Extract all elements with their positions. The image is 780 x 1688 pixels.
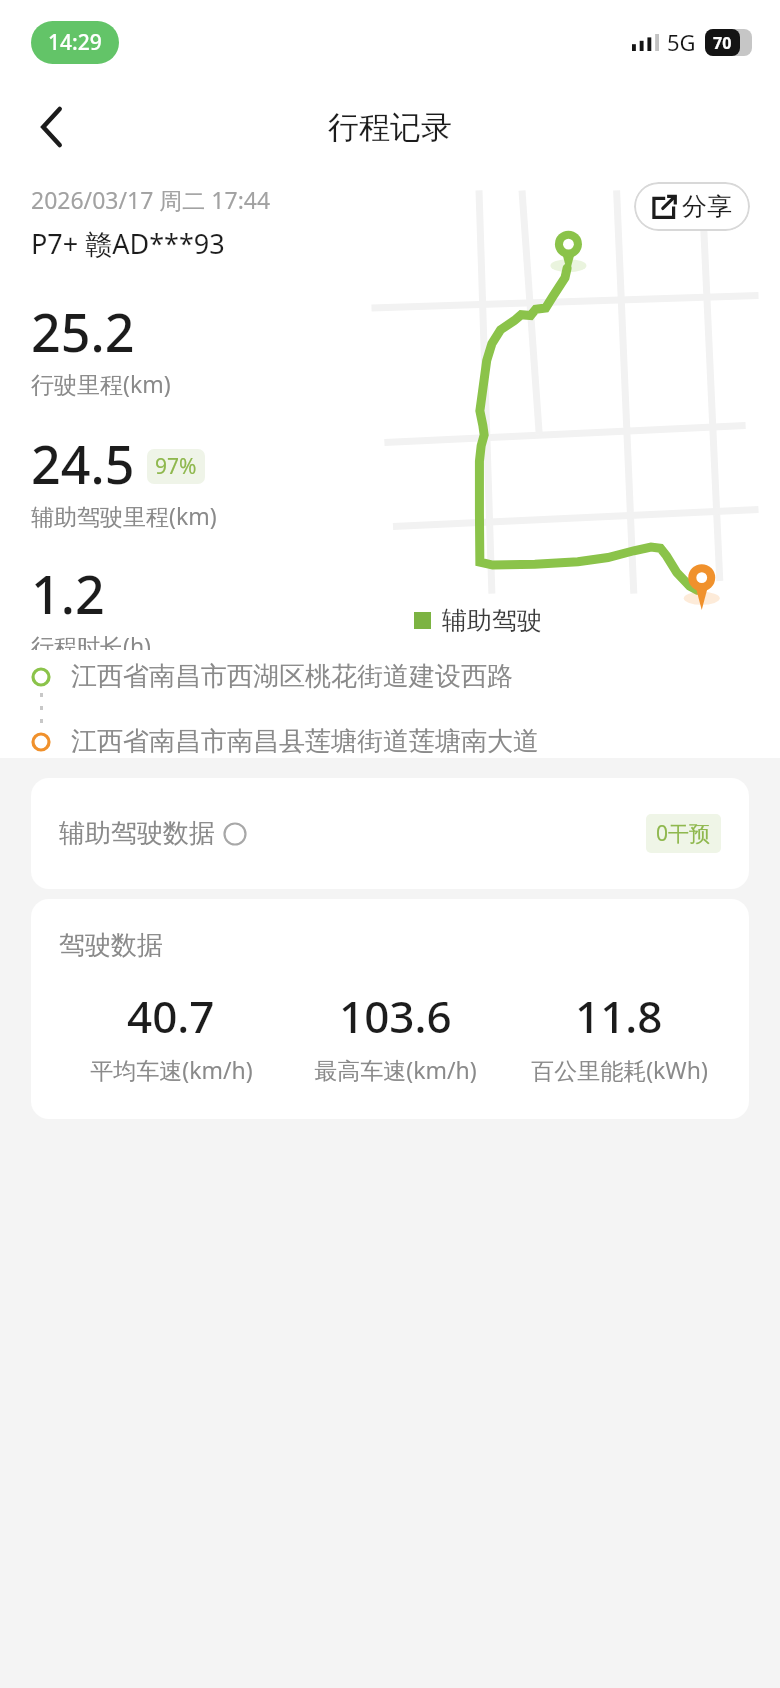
staticText: 辅助驾驶 [442, 605, 542, 636]
staticText: 江西省南昌市西湖区桃花街道建设西路 [71, 660, 513, 693]
staticText: 行程记录 [328, 108, 452, 147]
staticText: 平均车速(km/h) [90, 1054, 253, 1085]
staticText: 24.5 [31, 428, 135, 499]
staticText: 103.6 [339, 986, 452, 1046]
staticText: 5G [667, 27, 696, 57]
button[interactable]: Back [20, 95, 84, 159]
staticText: 百公里能耗(kWh) [531, 1054, 708, 1085]
staticText: 最高车速(km/h) [314, 1054, 477, 1085]
staticText: 辅助驾驶数据 [59, 817, 215, 850]
staticText: 行程时长(h) [31, 630, 152, 650]
staticText: 江西省南昌市南昌县莲塘街道莲塘南大道 [71, 725, 539, 758]
staticText: 1.2 [31, 558, 105, 629]
button[interactable]: 辅助驾驶数据 [31, 778, 749, 889]
button[interactable]: 分享 [634, 182, 750, 231]
staticText: 行驶里程(km) [31, 368, 171, 399]
staticText: 2026/03/17 周二 17:44 [31, 184, 271, 215]
staticText: 70 [713, 32, 732, 54]
staticText: 14:29 [48, 28, 102, 57]
staticText: P7+ 赣AD***93 [31, 225, 225, 262]
staticText: 25.2 [31, 296, 135, 367]
staticText: 11.8 [575, 986, 663, 1046]
staticText: 97% [155, 452, 197, 481]
staticText: 驾驶数据 [59, 929, 163, 962]
staticText: 0干预 [656, 819, 711, 848]
staticText: 辅助驾驶里程(km) [31, 500, 217, 531]
staticText: 分享 [682, 191, 732, 222]
staticText: 40.7 [127, 986, 215, 1046]
